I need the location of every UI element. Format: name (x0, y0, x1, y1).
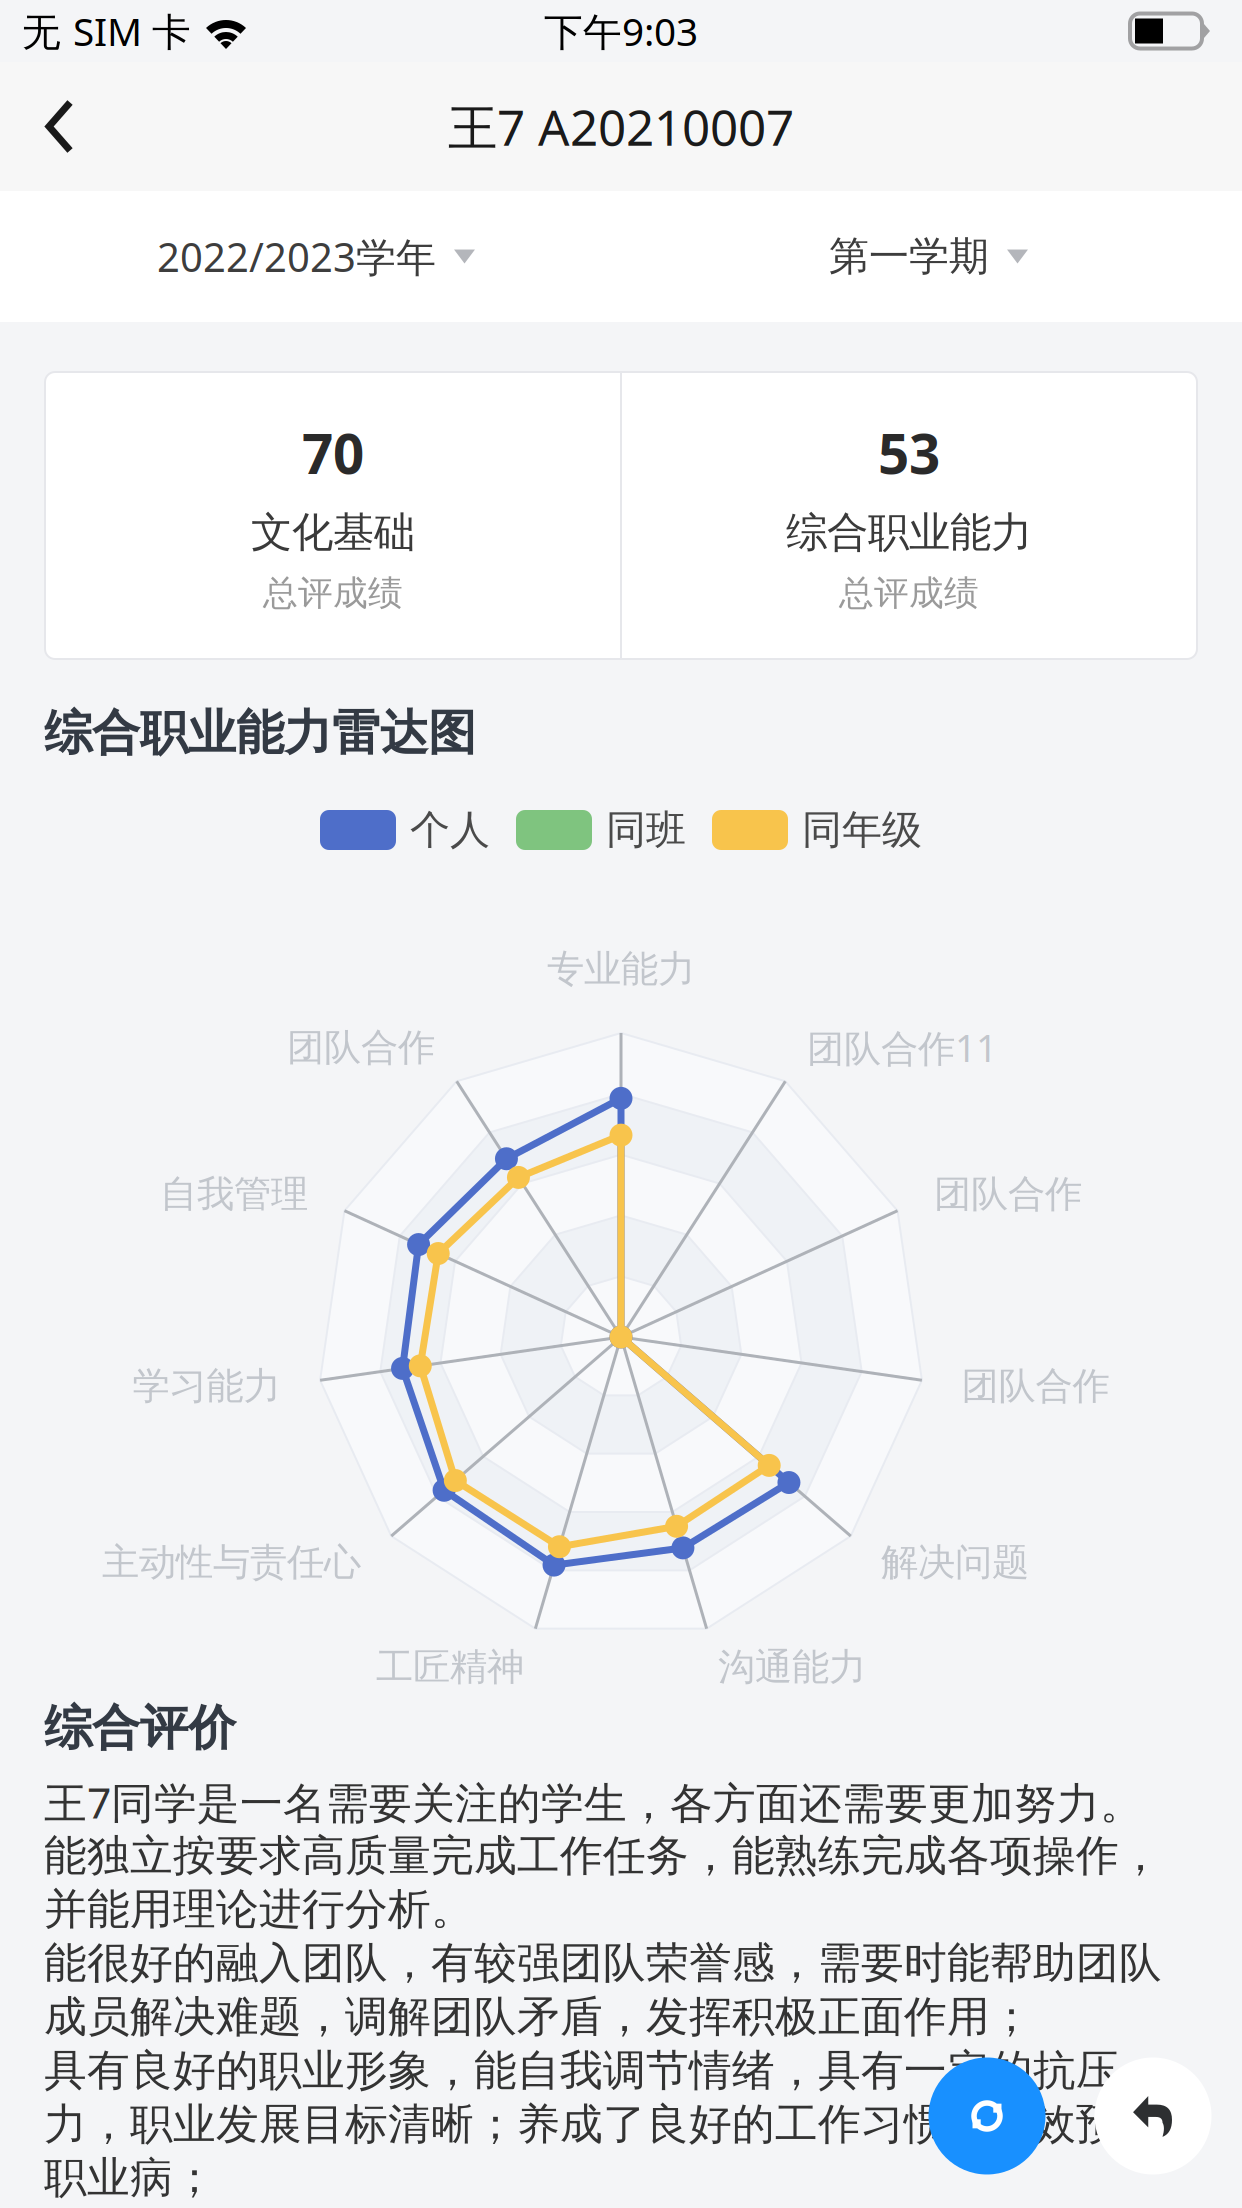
button[interactable]: 2022/2023学年 (157, 200, 475, 313)
staticText: 2022/2023学年 (157, 230, 436, 283)
staticText: 解决问题 (881, 1539, 1029, 1585)
staticText: 综合职业能力雷达图 (44, 703, 476, 762)
button[interactable]: 第一学期 (829, 202, 1028, 311)
staticText: 总评成绩 (839, 572, 979, 614)
staticText: 综合评价 (44, 1698, 236, 1757)
staticText: 团队合作11 (807, 1023, 997, 1072)
staticText: 团队合作 (934, 1171, 1082, 1217)
button[interactable]: 刷新 (928, 2057, 1045, 2174)
staticText: 并能用理论进行分析。 (44, 1883, 474, 1936)
staticText: 综合职业能力 (786, 507, 1032, 558)
staticText: 第一学期 (829, 232, 989, 281)
staticText: 具有良好的职业形象，能自我调节情绪，具有一定的抗压 (44, 2044, 1119, 2097)
staticText: 沟通能力 (718, 1644, 866, 1690)
staticText: 团队合作 (961, 1363, 1109, 1409)
staticText: 工匠精神 (376, 1644, 524, 1690)
staticText: 学习能力 (132, 1363, 280, 1409)
button[interactable]: 返回 (1094, 2057, 1211, 2174)
staticText: 无 SIM 卡 (22, 5, 191, 57)
staticText: 总评成绩 (263, 572, 403, 614)
staticText: 70 (302, 416, 364, 489)
staticText: 文化基础 (251, 507, 415, 558)
staticText: 职业病； (44, 2152, 216, 2204)
staticText: 下午9:03 (544, 5, 698, 57)
staticText: 自我管理 (160, 1171, 308, 1217)
staticText: 成员解决难题，调解团队矛盾，发挥积极正面作用； (44, 1991, 1033, 2043)
staticText: 同年级 (802, 805, 922, 854)
staticText: 王7同学是一名需要关注的学生，各方面还需要更加努力。 (44, 1774, 1143, 1830)
staticText: 能独立按要求高质量完成工作任务，能熟练完成各项操作， (44, 1829, 1162, 1882)
staticText: 力，职业发展目标清晰；养成了良好的工作习惯，有效预防 (44, 2098, 1162, 2150)
staticText: 团队合作 (287, 1025, 435, 1071)
staticText: 王7 A20210007 (448, 94, 794, 159)
button[interactable]: 返回 (0, 63, 122, 189)
staticText: 主动性与责任心 (102, 1539, 361, 1585)
staticText: 53 (878, 416, 940, 489)
staticText: 同班 (606, 805, 686, 854)
staticText: 专业能力 (547, 946, 695, 992)
staticText: 能很好的融入团队，有较强团队荣誉感，需要时能帮助团队 (44, 1937, 1162, 1989)
staticText: 个人 (410, 805, 490, 854)
